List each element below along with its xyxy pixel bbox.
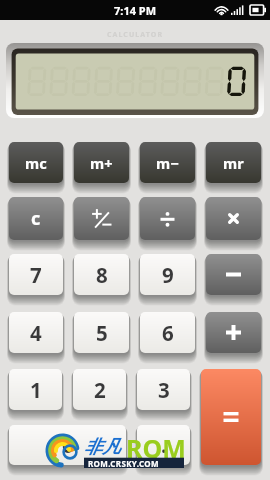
- button[interactable]: 5: [74, 312, 129, 353]
- button[interactable]: 8: [74, 254, 129, 295]
- staticText: 3: [158, 376, 170, 404]
- staticText: 4: [30, 319, 42, 347]
- button[interactable]: Plus minus: [74, 197, 129, 240]
- button[interactable]: 6: [140, 312, 195, 353]
- button[interactable]: 4: [9, 312, 63, 353]
- staticText: m−: [156, 153, 179, 173]
- button[interactable]: 9: [140, 254, 195, 295]
- staticText: c: [31, 206, 41, 231]
- staticText: .: [161, 431, 167, 459]
- button[interactable]: 0: [9, 425, 126, 465]
- staticText: 非凡: [84, 436, 120, 459]
- button[interactable]: m+: [74, 142, 129, 183]
- button[interactable]: Minus: [206, 254, 261, 295]
- staticText: mr: [223, 153, 244, 173]
- staticText: 6: [162, 319, 174, 347]
- staticText: ROM.CRSKY.COM: [88, 458, 159, 469]
- staticText: mc: [25, 153, 47, 173]
- button[interactable]: c: [9, 197, 63, 240]
- staticText: m+: [90, 153, 113, 173]
- button[interactable]: 3: [137, 369, 190, 410]
- staticText: 8: [96, 261, 108, 289]
- button[interactable]: 2: [73, 369, 126, 410]
- staticText: 7: [30, 261, 42, 289]
- staticText: RQM: [126, 431, 186, 465]
- staticText: 0: [62, 431, 74, 459]
- button[interactable]: 7: [9, 254, 63, 295]
- staticText: 1: [30, 376, 42, 404]
- button[interactable]: 1: [9, 369, 62, 410]
- button[interactable]: m−: [140, 142, 195, 183]
- button[interactable]: Plus: [206, 312, 261, 353]
- staticText: 2: [94, 376, 106, 404]
- button[interactable]: Divide: [140, 197, 195, 240]
- staticText: 9: [162, 261, 174, 289]
- button[interactable]: mc: [9, 142, 63, 183]
- button[interactable]: Multiply: [206, 197, 261, 240]
- button[interactable]: mr: [206, 142, 261, 183]
- button[interactable]: Equals: [201, 369, 261, 465]
- staticText: 7:14 PM: [114, 3, 157, 18]
- staticText: 5: [96, 319, 108, 347]
- button[interactable]: .: [137, 425, 190, 465]
